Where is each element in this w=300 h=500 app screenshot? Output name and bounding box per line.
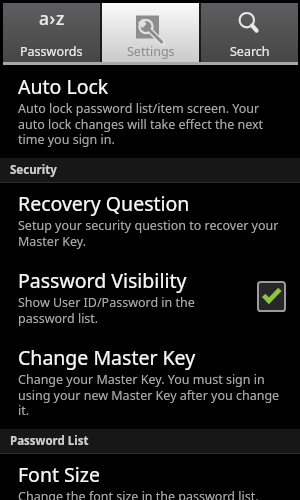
- staticText: Settings: [127, 43, 175, 60]
- button[interactable]: Recovery Question: [0, 183, 300, 260]
- button[interactable]: Auto Lock: [0, 66, 300, 158]
- other: Search: [237, 11, 263, 37]
- button[interactable]: Password visibility checkbox, checked: [257, 281, 286, 312]
- staticText: Change Master Key: [18, 344, 196, 371]
- staticText: Auto lock password list/item screen. You…: [18, 100, 280, 147]
- button[interactable]: Search: [201, 3, 298, 62]
- button[interactable]: Settings: [102, 3, 199, 62]
- staticText: Security: [10, 162, 57, 178]
- staticText: Change the font size in the password lis…: [18, 488, 280, 500]
- staticText: Recovery Question: [18, 190, 190, 217]
- button[interactable]: Passwords: [3, 3, 100, 62]
- staticText: Show User ID/Password in the password li…: [18, 294, 233, 326]
- button[interactable]: Font Size: [0, 454, 300, 500]
- staticText: a›z: [39, 6, 65, 30]
- staticText: Font Size: [18, 461, 100, 488]
- button[interactable]: Password Visibility: [0, 260, 300, 337]
- staticText: Auto Lock: [18, 73, 109, 100]
- staticText: Passwords: [20, 43, 83, 60]
- staticText: Password List: [10, 433, 89, 449]
- other: Passwords: [35, 11, 69, 37]
- staticText: Search: [230, 43, 270, 60]
- staticText: Setup your security question to recover …: [18, 217, 280, 249]
- button[interactable]: Change Master Key: [0, 337, 300, 429]
- other: Settings: [135, 11, 167, 43]
- staticText: Password Visibility: [18, 267, 187, 294]
- staticText: Change your Master Key. You must sign in…: [18, 371, 280, 418]
